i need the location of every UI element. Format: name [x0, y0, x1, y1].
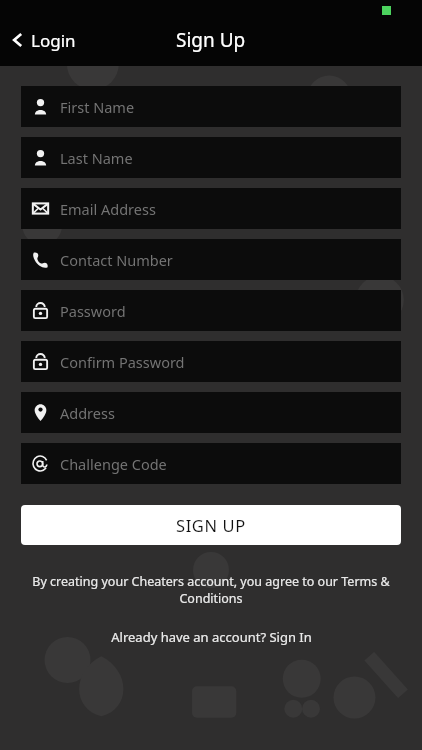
staticText: Password: [60, 301, 126, 321]
button[interactable]: Confirm Password: [21, 341, 401, 382]
button[interactable]: Contact Number: [21, 239, 401, 280]
staticText: By creating your Cheaters account, you a…: [22, 573, 400, 606]
button[interactable]: Email Address: [21, 188, 401, 229]
staticText: Address: [60, 403, 115, 423]
staticText: Sign Up: [176, 27, 246, 53]
staticText: Already have an account? Sign In: [111, 628, 312, 646]
button[interactable]: Challenge Code: [21, 443, 401, 484]
button[interactable]: First Name: [21, 86, 401, 127]
button[interactable]: SIGN UP: [21, 505, 401, 545]
staticText: Last Name: [60, 148, 133, 168]
staticText: SIGN UP: [176, 514, 246, 536]
button[interactable]: Address: [21, 392, 401, 433]
button[interactable]: Login: [10, 20, 76, 60]
staticText: Login: [31, 29, 76, 52]
staticText: Contact Number: [60, 250, 173, 270]
button[interactable]: Last Name: [21, 137, 401, 178]
staticText: First Name: [60, 97, 135, 117]
button[interactable]: Password: [21, 290, 401, 331]
staticText: Confirm Password: [60, 352, 185, 372]
staticText: Email Address: [60, 199, 156, 219]
staticText: Challenge Code: [60, 454, 167, 474]
button[interactable]: Already have an account? Sign In: [0, 628, 422, 646]
